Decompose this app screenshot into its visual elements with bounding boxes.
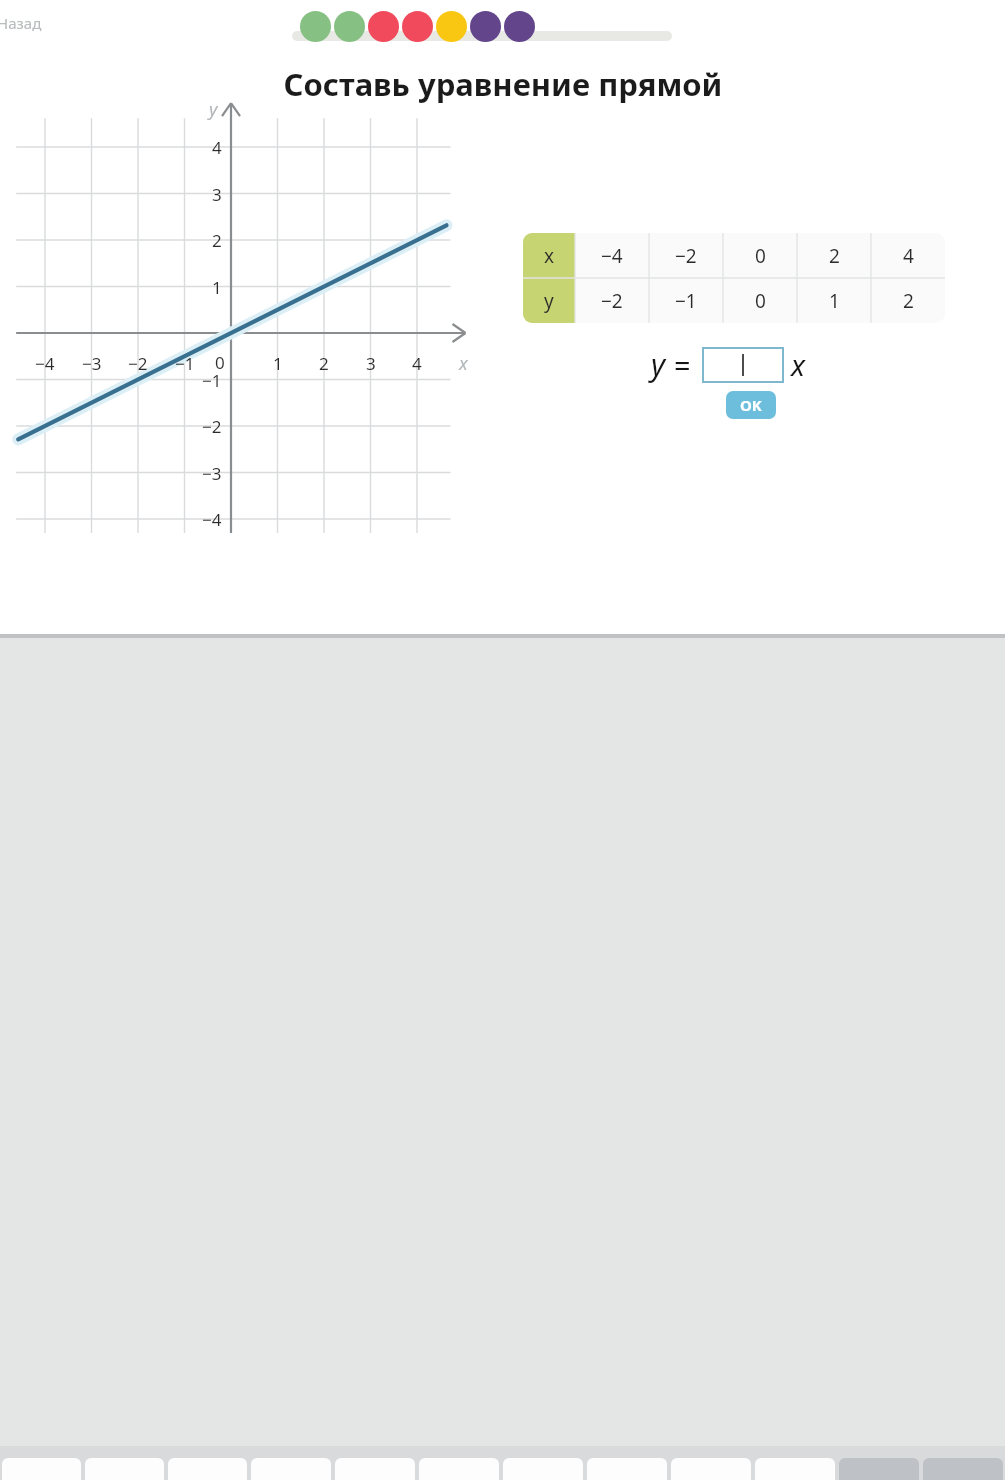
button[interactable]: Keyboard key 1 <box>2 1458 81 1480</box>
staticText: 1 <box>829 288 840 314</box>
staticText: 0 <box>215 351 225 374</box>
staticText: 3 <box>366 352 376 375</box>
staticText: 4 <box>412 352 422 375</box>
button[interactable]: Keyboard key 5 <box>335 1458 415 1480</box>
staticText: 4 <box>212 136 222 159</box>
staticText: = <box>674 345 691 384</box>
button[interactable]: Keyboard key 4 <box>251 1458 331 1480</box>
staticText: −3 <box>82 352 102 375</box>
staticText: x <box>791 345 806 384</box>
button[interactable]: Назад <box>0 9 46 37</box>
staticText: −2 <box>202 415 222 438</box>
staticText: −4 <box>35 352 55 375</box>
button[interactable]: OK <box>726 391 776 419</box>
staticText: 1 <box>273 352 283 375</box>
staticText: −4 <box>601 243 623 269</box>
button[interactable]: Keyboard key 3 <box>168 1458 247 1480</box>
staticText: 2 <box>903 288 914 314</box>
button[interactable]: Keyboard key 2 <box>85 1458 164 1480</box>
staticText: −1 <box>175 352 195 375</box>
staticText: 2 <box>829 243 840 269</box>
button[interactable]: Keyboard key 8 <box>587 1458 667 1480</box>
staticText: Назад <box>0 13 42 33</box>
staticText: OK <box>740 395 762 415</box>
staticText: y <box>209 97 218 122</box>
staticText: 1 <box>212 276 222 299</box>
button[interactable]: Keyboard key 9 <box>671 1458 751 1480</box>
staticText: 2 <box>319 352 329 375</box>
staticText: x <box>459 351 468 376</box>
staticText: x <box>544 243 555 269</box>
button[interactable]: Keyboard key 10 <box>755 1458 835 1480</box>
staticText: 0 <box>755 243 766 269</box>
staticText: 0 <box>755 288 766 314</box>
staticText: 3 <box>212 183 222 206</box>
staticText: −2 <box>601 288 623 314</box>
button[interactable]: Keyboard key 6 <box>419 1458 499 1480</box>
staticText: 2 <box>212 229 222 252</box>
staticText: −1 <box>202 369 222 392</box>
staticText: −3 <box>202 462 222 485</box>
staticText: −2 <box>128 352 148 375</box>
staticText: −2 <box>675 243 697 269</box>
button[interactable]: Answer input <box>702 347 784 383</box>
staticText: 4 <box>903 243 914 269</box>
staticText: −4 <box>202 508 222 531</box>
staticText: y <box>651 344 666 385</box>
staticText: −1 <box>675 288 697 314</box>
staticText: y <box>544 288 554 314</box>
button[interactable]: Keyboard key 7 <box>503 1458 583 1480</box>
staticText: Составь уравнение прямой <box>283 63 723 105</box>
